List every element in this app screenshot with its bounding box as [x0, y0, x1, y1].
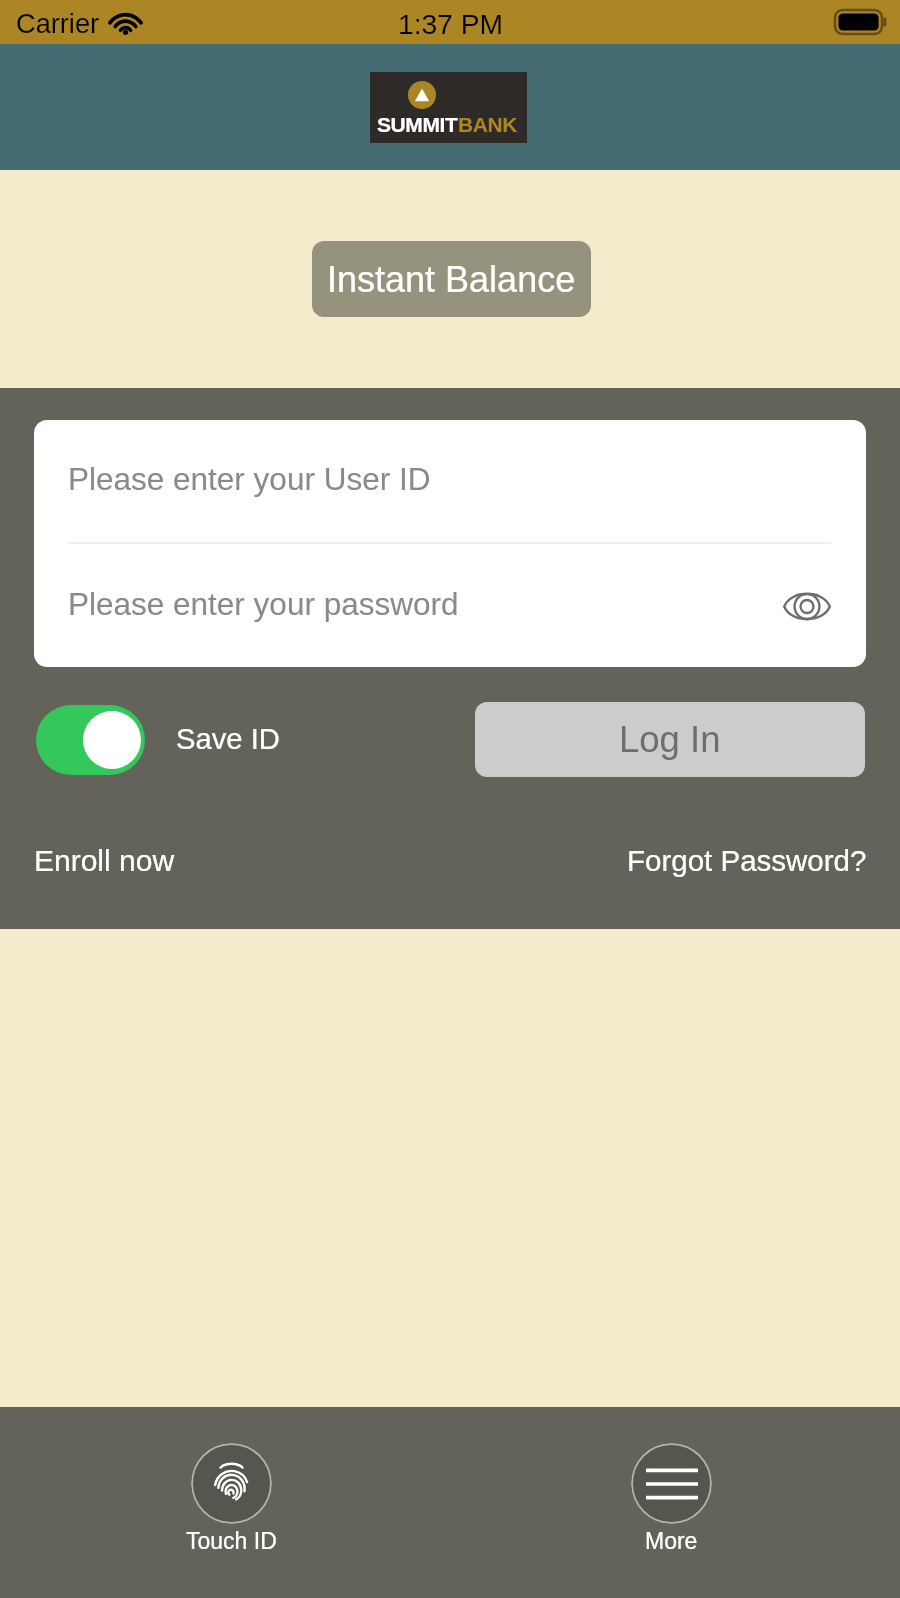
- staticText: More: [645, 1528, 698, 1554]
- button[interactable]: Instant Balance: [312, 241, 591, 317]
- button[interactable]: Save ID: [36, 705, 145, 775]
- staticText: Please enter your password: [68, 586, 459, 621]
- staticText: Carrier: [16, 8, 100, 38]
- button[interactable]: Please enter your password: [34, 544, 866, 667]
- staticText: 1:37 PM: [398, 8, 503, 40]
- button[interactable]: Show password: [778, 577, 836, 635]
- button[interactable]: Touch ID: [161, 1435, 301, 1562]
- staticText: Log In: [619, 719, 721, 760]
- button[interactable]: Enroll now: [30, 840, 179, 882]
- button[interactable]: Forgot Password?: [623, 840, 871, 881]
- staticText: BANK: [458, 113, 518, 136]
- staticText: Touch ID: [186, 1528, 277, 1554]
- staticText: Enroll now: [34, 844, 175, 878]
- button[interactable]: Summit Bank: [370, 72, 527, 143]
- staticText: SUMMIT: [377, 113, 458, 136]
- staticText: Please enter your User ID: [68, 461, 431, 496]
- staticText: Forgot Password?: [627, 844, 867, 877]
- staticText: Instant Balance: [327, 259, 576, 299]
- button[interactable]: More: [601, 1435, 741, 1562]
- button[interactable]: Log In: [475, 702, 865, 777]
- staticText: Save ID: [176, 723, 280, 756]
- button[interactable]: Please enter your User ID: [34, 420, 866, 542]
